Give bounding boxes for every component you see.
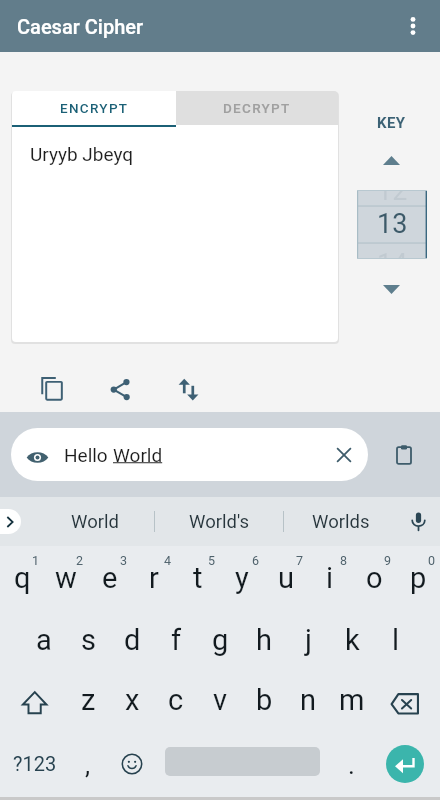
button[interactable]: World xyxy=(35,497,154,546)
staticText: 6 xyxy=(252,553,260,568)
staticText: ?123 xyxy=(13,752,57,775)
staticText: i xyxy=(326,561,334,595)
button[interactable]: y xyxy=(220,546,264,608)
staticText: a xyxy=(36,623,52,657)
button[interactable]: z xyxy=(66,671,110,729)
staticText: y xyxy=(235,561,249,595)
button[interactable]: Copy xyxy=(31,365,75,409)
staticText: 13 xyxy=(377,208,408,240)
staticText: k xyxy=(345,623,360,657)
button[interactable]: Expand suggestions xyxy=(0,509,21,534)
button[interactable]: h xyxy=(242,608,286,671)
staticText: Hello xyxy=(64,444,113,466)
staticText: . xyxy=(348,750,355,780)
button[interactable]: Share xyxy=(100,365,144,409)
button[interactable]: f xyxy=(154,608,198,671)
staticText: World's xyxy=(189,511,249,533)
staticText: 4 xyxy=(164,553,172,568)
staticText: c xyxy=(168,683,184,717)
staticText: r xyxy=(149,561,159,595)
button[interactable]: q xyxy=(0,546,44,608)
button[interactable]: DECRYPT xyxy=(176,91,338,125)
button[interactable]: Increase key xyxy=(369,146,413,174)
staticText: p xyxy=(410,561,427,595)
button[interactable]: e xyxy=(88,546,132,608)
staticText: 0 xyxy=(428,553,436,568)
button[interactable]: a xyxy=(22,608,66,671)
button[interactable]: g xyxy=(198,608,242,671)
button[interactable]: Shift xyxy=(0,671,66,729)
staticText: Caesar Cipher xyxy=(17,15,144,38)
staticText: n xyxy=(300,683,317,717)
button[interactable]: k xyxy=(330,608,374,671)
button[interactable]: u xyxy=(264,546,308,608)
staticText: DECRYPT xyxy=(223,100,291,116)
staticText: 8 xyxy=(340,553,348,568)
staticText: 7 xyxy=(296,553,304,568)
button[interactable]: Paste xyxy=(383,434,424,475)
button[interactable]: Voice input xyxy=(396,497,440,546)
button[interactable]: , xyxy=(66,729,110,790)
staticText: d xyxy=(124,623,141,657)
button[interactable]: c xyxy=(154,671,198,729)
staticText: 1 xyxy=(32,553,40,568)
button[interactable]: o xyxy=(352,546,396,608)
staticText: ENCRYPT xyxy=(60,100,129,116)
staticText: s xyxy=(81,623,96,657)
button[interactable]: Backspace xyxy=(374,671,440,729)
staticText: e xyxy=(102,561,118,595)
button[interactable]: Swap xyxy=(168,366,212,410)
staticText: Worlds xyxy=(312,511,370,533)
button[interactable]: Worlds xyxy=(284,497,398,546)
staticText: Uryyb Jbeyq xyxy=(30,143,134,165)
staticText: 14 xyxy=(377,248,408,259)
button[interactable]: x xyxy=(110,671,154,729)
staticText: 5 xyxy=(208,553,216,568)
button[interactable]: Emoji xyxy=(110,729,154,790)
button[interactable]: s xyxy=(66,608,110,671)
button[interactable]: m xyxy=(330,671,374,729)
button[interactable]: r xyxy=(132,546,176,608)
staticText: 9 xyxy=(384,553,392,568)
staticText: 3 xyxy=(120,553,128,568)
staticText: m xyxy=(339,683,365,717)
button[interactable]: Decrease key xyxy=(369,275,413,303)
button[interactable]: w xyxy=(44,546,88,608)
button[interactable]: b xyxy=(242,671,286,729)
staticText: o xyxy=(366,561,383,595)
staticText: KEY xyxy=(377,114,406,132)
staticText: z xyxy=(81,683,96,717)
button[interactable]: ENCRYPT xyxy=(12,91,176,125)
button[interactable]: Key value 13 xyxy=(357,190,427,259)
button[interactable]: t xyxy=(176,546,220,608)
button[interactable]: World's xyxy=(155,497,283,546)
button[interactable]: d xyxy=(110,608,154,671)
staticText: x xyxy=(125,683,140,717)
button[interactable]: j xyxy=(286,608,330,671)
staticText: w xyxy=(55,561,77,595)
button[interactable]: i xyxy=(308,546,352,608)
staticText: , xyxy=(85,750,91,780)
staticText: l xyxy=(392,623,400,657)
staticText: j xyxy=(305,623,312,657)
button[interactable]: l xyxy=(374,608,418,671)
button[interactable]: p xyxy=(396,546,440,608)
staticText: 12 xyxy=(377,190,408,207)
button[interactable]: Enter xyxy=(374,729,440,790)
button[interactable]: Space xyxy=(154,729,330,790)
button[interactable]: More options xyxy=(388,0,440,52)
button[interactable]: ?123 xyxy=(0,729,66,790)
button[interactable]: Hello xyxy=(11,428,368,481)
staticText: t xyxy=(193,561,203,595)
button[interactable]: n xyxy=(286,671,330,729)
staticText: h xyxy=(256,623,272,657)
staticText: World xyxy=(71,511,119,533)
staticText: World xyxy=(113,444,163,466)
staticText: u xyxy=(278,561,294,595)
button[interactable]: v xyxy=(198,671,242,729)
staticText: f xyxy=(171,623,182,657)
staticText: b xyxy=(256,683,273,717)
button[interactable]: Clear xyxy=(320,428,368,481)
staticText: v xyxy=(213,683,228,717)
button[interactable]: . xyxy=(330,729,374,790)
